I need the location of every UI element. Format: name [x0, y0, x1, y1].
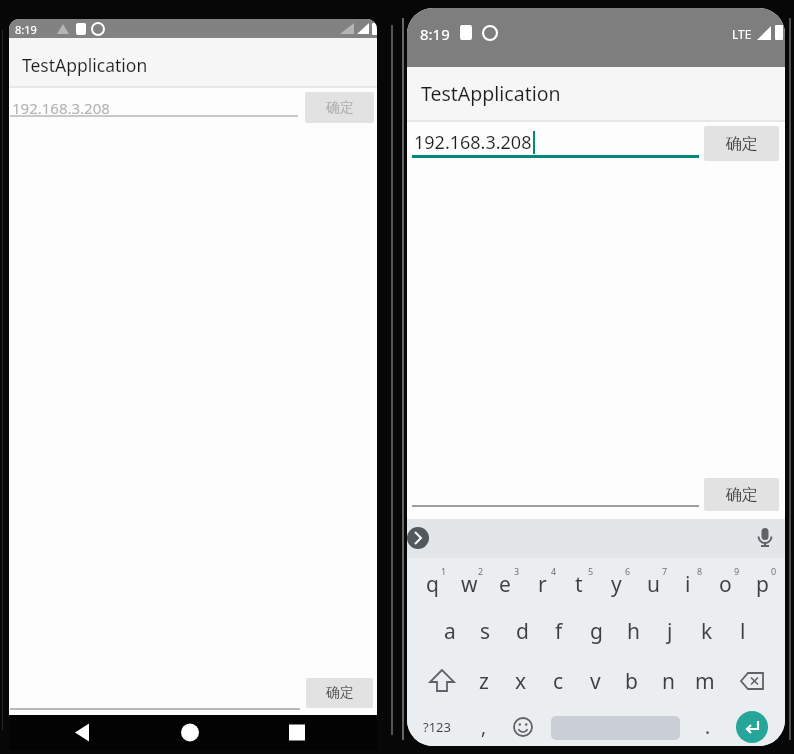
button[interactable] — [407, 519, 433, 558]
staticText: p — [756, 570, 769, 599]
staticText: ?123 — [423, 718, 451, 736]
button[interactable]: v — [577, 666, 613, 696]
button[interactable]: n — [650, 666, 686, 696]
button[interactable]: 确定 — [704, 478, 779, 511]
button[interactable] — [551, 712, 680, 740]
staticText: x — [515, 667, 527, 696]
staticText: m — [695, 667, 715, 696]
staticText: 确定 — [726, 134, 758, 154]
staticText: 确定 — [326, 684, 354, 702]
staticText: u — [647, 570, 660, 599]
button[interactable]: b — [613, 666, 649, 696]
staticText: v — [590, 667, 601, 696]
staticText: 4 — [551, 565, 557, 577]
staticText: d — [516, 617, 529, 646]
staticText: 192.168.3.208 — [414, 130, 532, 155]
button[interactable]: m — [687, 666, 723, 696]
staticText: t — [575, 570, 583, 599]
staticText: 确定 — [726, 485, 758, 505]
button[interactable]: . — [690, 712, 726, 742]
button[interactable]: 确定 — [305, 92, 374, 123]
button[interactable] — [170, 715, 210, 750]
button[interactable]: q — [414, 569, 450, 599]
button[interactable]: 确定 — [306, 678, 373, 708]
button[interactable]: f — [541, 616, 577, 646]
staticText: 6 — [625, 565, 631, 577]
staticText: 3 — [514, 565, 520, 577]
button[interactable]: h — [615, 616, 651, 646]
staticText: q — [426, 570, 439, 599]
staticText: 8:19 — [15, 22, 37, 37]
staticText: LTE — [732, 26, 752, 42]
button[interactable]: o — [707, 569, 743, 599]
staticText: a — [444, 617, 456, 646]
button[interactable]: p — [744, 569, 780, 599]
staticText: i — [685, 570, 691, 599]
button[interactable]: y — [598, 569, 634, 599]
button[interactable]: l — [725, 616, 761, 646]
staticText: 8:19 — [420, 24, 450, 44]
button[interactable]: d — [504, 616, 540, 646]
button[interactable]: j — [652, 616, 688, 646]
staticText: 0 — [771, 565, 777, 577]
staticText: y — [611, 570, 622, 599]
staticText: 192.168.3.208 — [12, 98, 110, 118]
staticText: TestApplication — [22, 53, 148, 77]
staticText: n — [662, 667, 675, 696]
staticText: j — [667, 617, 673, 646]
staticText: s — [480, 617, 491, 646]
button[interactable]: i — [670, 569, 706, 599]
button[interactable]: w — [451, 569, 487, 599]
staticText: r — [538, 570, 547, 599]
button[interactable] — [277, 715, 317, 750]
staticText: g — [590, 617, 603, 646]
staticText: 7 — [662, 565, 668, 577]
staticText: o — [719, 570, 732, 599]
staticText: b — [625, 667, 638, 696]
staticText: e — [499, 570, 511, 599]
button[interactable]: t — [561, 569, 597, 599]
button[interactable] — [734, 666, 770, 696]
staticText: 1 — [441, 565, 447, 577]
button[interactable]: ?123 — [419, 712, 455, 742]
staticText: z — [479, 667, 489, 696]
staticText: 2 — [478, 565, 484, 577]
button[interactable] — [424, 666, 460, 696]
staticText: 8 — [697, 565, 703, 577]
staticText: h — [627, 617, 640, 646]
staticText: c — [553, 667, 564, 696]
button[interactable]: 确定 — [704, 126, 779, 161]
button[interactable]: , — [466, 712, 502, 742]
button[interactable]: a — [432, 616, 468, 646]
button[interactable]: c — [540, 666, 576, 696]
button[interactable]: s — [467, 616, 503, 646]
staticText: . — [705, 714, 711, 740]
button[interactable]: x — [503, 666, 539, 696]
staticText: k — [701, 617, 713, 646]
button[interactable]: e — [487, 569, 523, 599]
button[interactable]: r — [524, 569, 560, 599]
button[interactable]: u — [635, 569, 671, 599]
button[interactable] — [65, 715, 105, 750]
staticText: 确定 — [326, 99, 354, 117]
staticText: 5 — [588, 565, 594, 577]
staticText: 9 — [734, 565, 740, 577]
staticText: w — [461, 570, 478, 599]
button[interactable] — [736, 711, 768, 743]
button[interactable] — [505, 712, 541, 742]
button[interactable] — [750, 519, 780, 558]
button[interactable]: k — [689, 616, 725, 646]
staticText: l — [740, 617, 746, 646]
button[interactable]: g — [578, 616, 614, 646]
button[interactable]: z — [466, 666, 502, 696]
staticText: TestApplication — [421, 80, 561, 107]
staticText: , — [481, 714, 487, 740]
staticText: f — [555, 617, 563, 646]
